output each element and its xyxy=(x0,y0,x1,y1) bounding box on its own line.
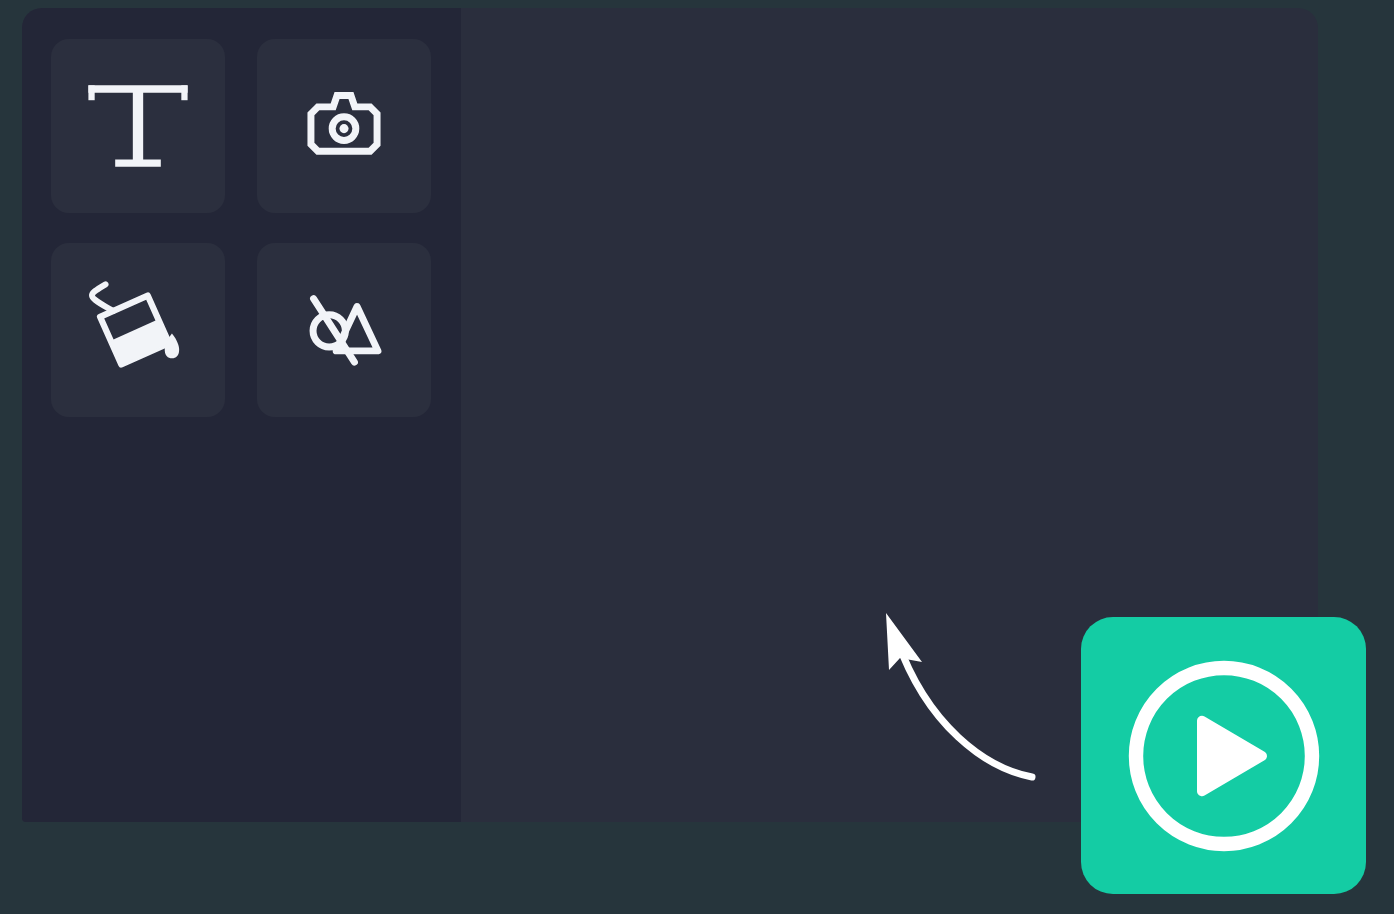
button[interactable]: Fill color xyxy=(51,243,225,417)
button[interactable]: Hide image xyxy=(257,243,431,417)
button[interactable]: Play xyxy=(1081,617,1366,894)
button[interactable]: Camera xyxy=(257,39,431,213)
button[interactable]: Text tool xyxy=(51,39,225,213)
